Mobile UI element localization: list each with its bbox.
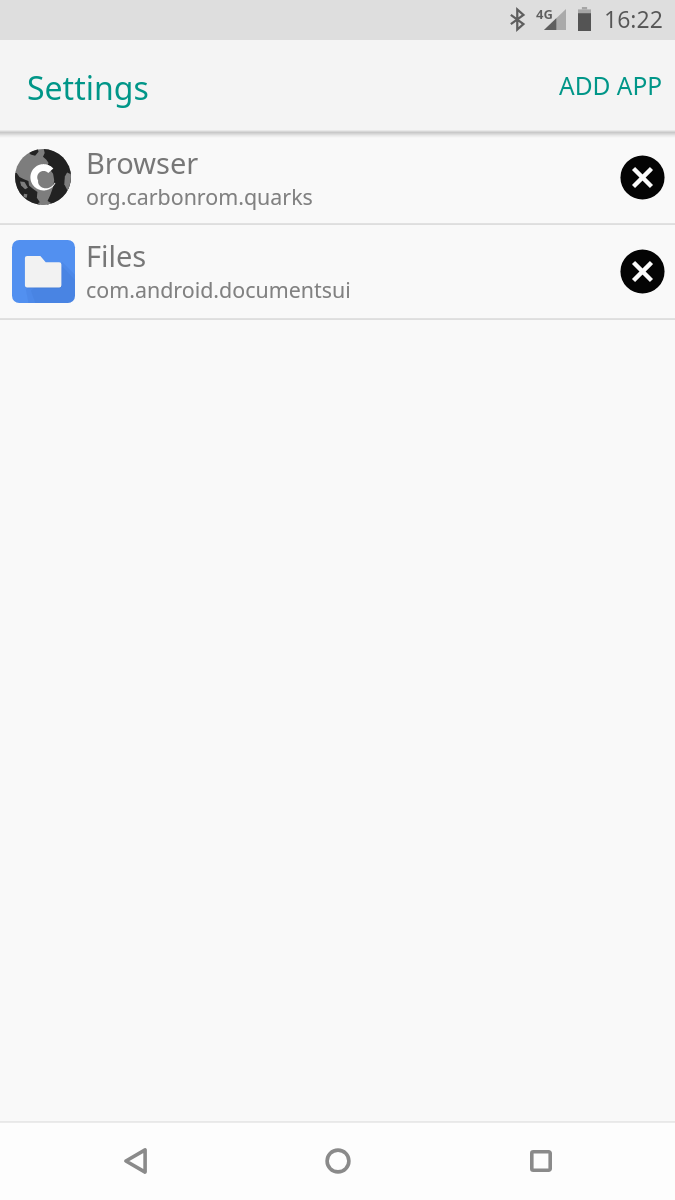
button[interactable]: Remove Browser [610, 131, 675, 223]
button[interactable]: Files [0, 225, 675, 318]
button[interactable]: Recents [493, 1122, 589, 1199]
button[interactable]: Home [290, 1122, 386, 1199]
button[interactable]: Back [87, 1122, 183, 1199]
staticText: Settings [27, 66, 149, 110]
staticText: 4G [536, 5, 553, 23]
button[interactable]: ADD APP [547, 55, 675, 116]
staticText: com.android.documentsui [86, 275, 351, 304]
button[interactable]: Browser [0, 131, 675, 223]
staticText: org.carbonrom.quarks [86, 182, 313, 211]
staticText: Files [86, 236, 147, 275]
staticText: Browser [86, 143, 199, 182]
staticText: 16:22 [604, 3, 663, 34]
staticText: ADD APP [559, 69, 663, 102]
button[interactable]: Remove Files [610, 225, 675, 318]
